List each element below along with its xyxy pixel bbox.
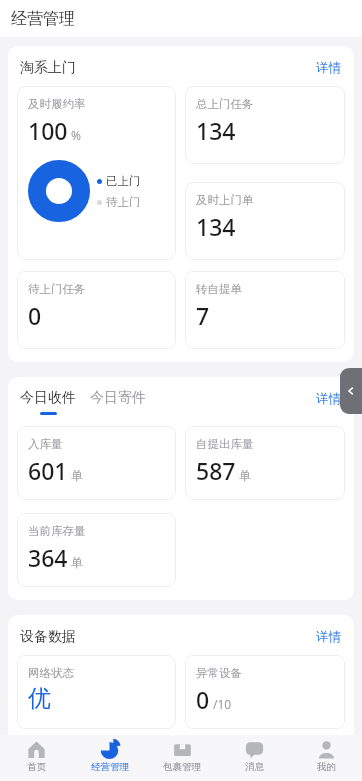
staticText: 首页 bbox=[27, 761, 46, 773]
staticText: 100 bbox=[28, 115, 68, 146]
staticText: 待上门 bbox=[106, 195, 141, 209]
staticText: 已上门 bbox=[106, 174, 141, 188]
staticText: 详情 bbox=[316, 60, 341, 76]
staticText: 异常设备 bbox=[196, 666, 242, 680]
staticText: 我的 bbox=[317, 761, 336, 773]
button[interactable]: 今日收件 bbox=[20, 389, 76, 415]
staticText: 总上门任务 bbox=[196, 97, 254, 111]
staticText: 单 bbox=[71, 468, 83, 483]
staticText: 364 bbox=[28, 542, 68, 573]
button[interactable]: 总上门任务 bbox=[185, 86, 345, 164]
staticText: % bbox=[71, 127, 81, 143]
staticText: 经营管理 bbox=[91, 761, 129, 773]
staticText: 入库量 bbox=[28, 437, 63, 451]
staticText: 今日收件 bbox=[20, 389, 76, 407]
staticText: 601 bbox=[28, 455, 68, 486]
staticText: 消息 bbox=[245, 761, 264, 773]
button[interactable]: 详情 bbox=[313, 627, 344, 647]
button[interactable]: 经营管理 bbox=[73, 735, 146, 781]
staticText: 详情 bbox=[316, 629, 341, 645]
staticText: 及时履约率 bbox=[28, 97, 86, 111]
staticText: 134 bbox=[196, 211, 236, 242]
button[interactable]: 网络状态 bbox=[17, 655, 176, 729]
staticText: 单 bbox=[239, 468, 251, 483]
button[interactable]: 首页 bbox=[0, 735, 73, 781]
staticText: 今日寄件 bbox=[90, 389, 146, 407]
staticText: 587 bbox=[196, 455, 236, 486]
button[interactable]: 转自提单 bbox=[185, 271, 345, 349]
button[interactable]: 消息 bbox=[218, 735, 290, 781]
button[interactable]: 包裹管理 bbox=[146, 735, 218, 781]
staticText: 经营管理 bbox=[11, 9, 75, 29]
staticText: 转自提单 bbox=[196, 282, 242, 296]
button[interactable]: 当前库存量 bbox=[17, 513, 176, 587]
button[interactable]: 详情 bbox=[313, 389, 344, 409]
staticText: 单 bbox=[71, 555, 83, 570]
button[interactable]: 我的 bbox=[290, 735, 362, 781]
staticText: 优 bbox=[28, 684, 51, 713]
staticText: 详情 bbox=[316, 391, 341, 407]
staticText: 134 bbox=[196, 115, 236, 146]
staticText: 0 bbox=[28, 300, 42, 331]
staticText: 0 bbox=[196, 684, 210, 715]
staticText: 自提出库量 bbox=[196, 437, 254, 451]
staticText: 当前库存量 bbox=[28, 524, 86, 538]
button[interactable]: 待上门任务 bbox=[17, 271, 176, 349]
staticText: /10 bbox=[213, 696, 232, 712]
button[interactable]: 今日寄件 bbox=[90, 389, 146, 407]
staticText: 设备数据 bbox=[20, 628, 76, 646]
staticText: 网络状态 bbox=[28, 666, 74, 680]
button[interactable]: 及时上门单 bbox=[185, 182, 345, 260]
button[interactable]: 入库量 bbox=[17, 426, 176, 500]
button[interactable]: 及时履约率 bbox=[17, 86, 176, 260]
button[interactable]: 展开侧边栏 bbox=[340, 368, 362, 414]
button[interactable]: 详情 bbox=[313, 58, 344, 78]
button[interactable]: 异常设备 bbox=[185, 655, 345, 729]
staticText: 包裹管理 bbox=[163, 761, 201, 773]
staticText: 及时上门单 bbox=[196, 193, 254, 207]
staticText: 待上门任务 bbox=[28, 282, 86, 296]
staticText: 淘系上门 bbox=[20, 59, 76, 77]
button[interactable]: 自提出库量 bbox=[185, 426, 345, 500]
staticText: 7 bbox=[196, 300, 210, 331]
